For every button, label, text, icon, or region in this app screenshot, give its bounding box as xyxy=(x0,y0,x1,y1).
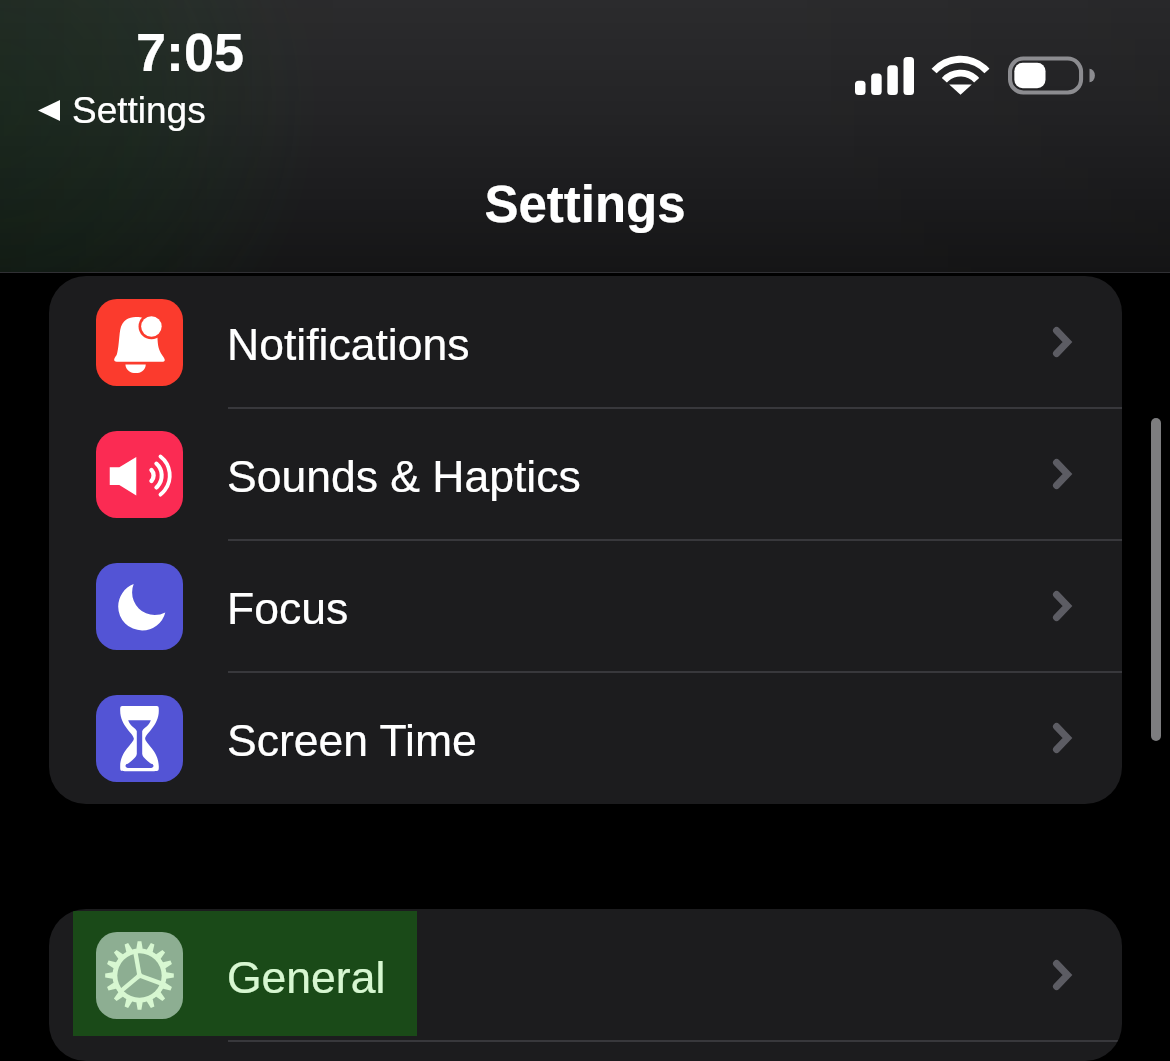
staticText: 7:05 xyxy=(136,22,245,82)
button[interactable]: General xyxy=(49,909,1122,1041)
staticText: Notifications xyxy=(227,320,470,370)
button[interactable]: Notifications xyxy=(49,276,1122,408)
staticText: Settings xyxy=(72,90,206,131)
staticText: General xyxy=(227,953,386,1003)
button[interactable]: Screen Time xyxy=(49,672,1122,804)
staticText: Settings xyxy=(0,176,1170,233)
button[interactable]: Back to Settings xyxy=(37,90,206,131)
staticText: Sounds & Haptics xyxy=(227,452,581,502)
staticText: Screen Time xyxy=(227,716,477,766)
button[interactable]: Sounds & Haptics xyxy=(49,408,1122,540)
staticText: Focus xyxy=(227,584,349,634)
button[interactable]: Focus xyxy=(49,540,1122,672)
